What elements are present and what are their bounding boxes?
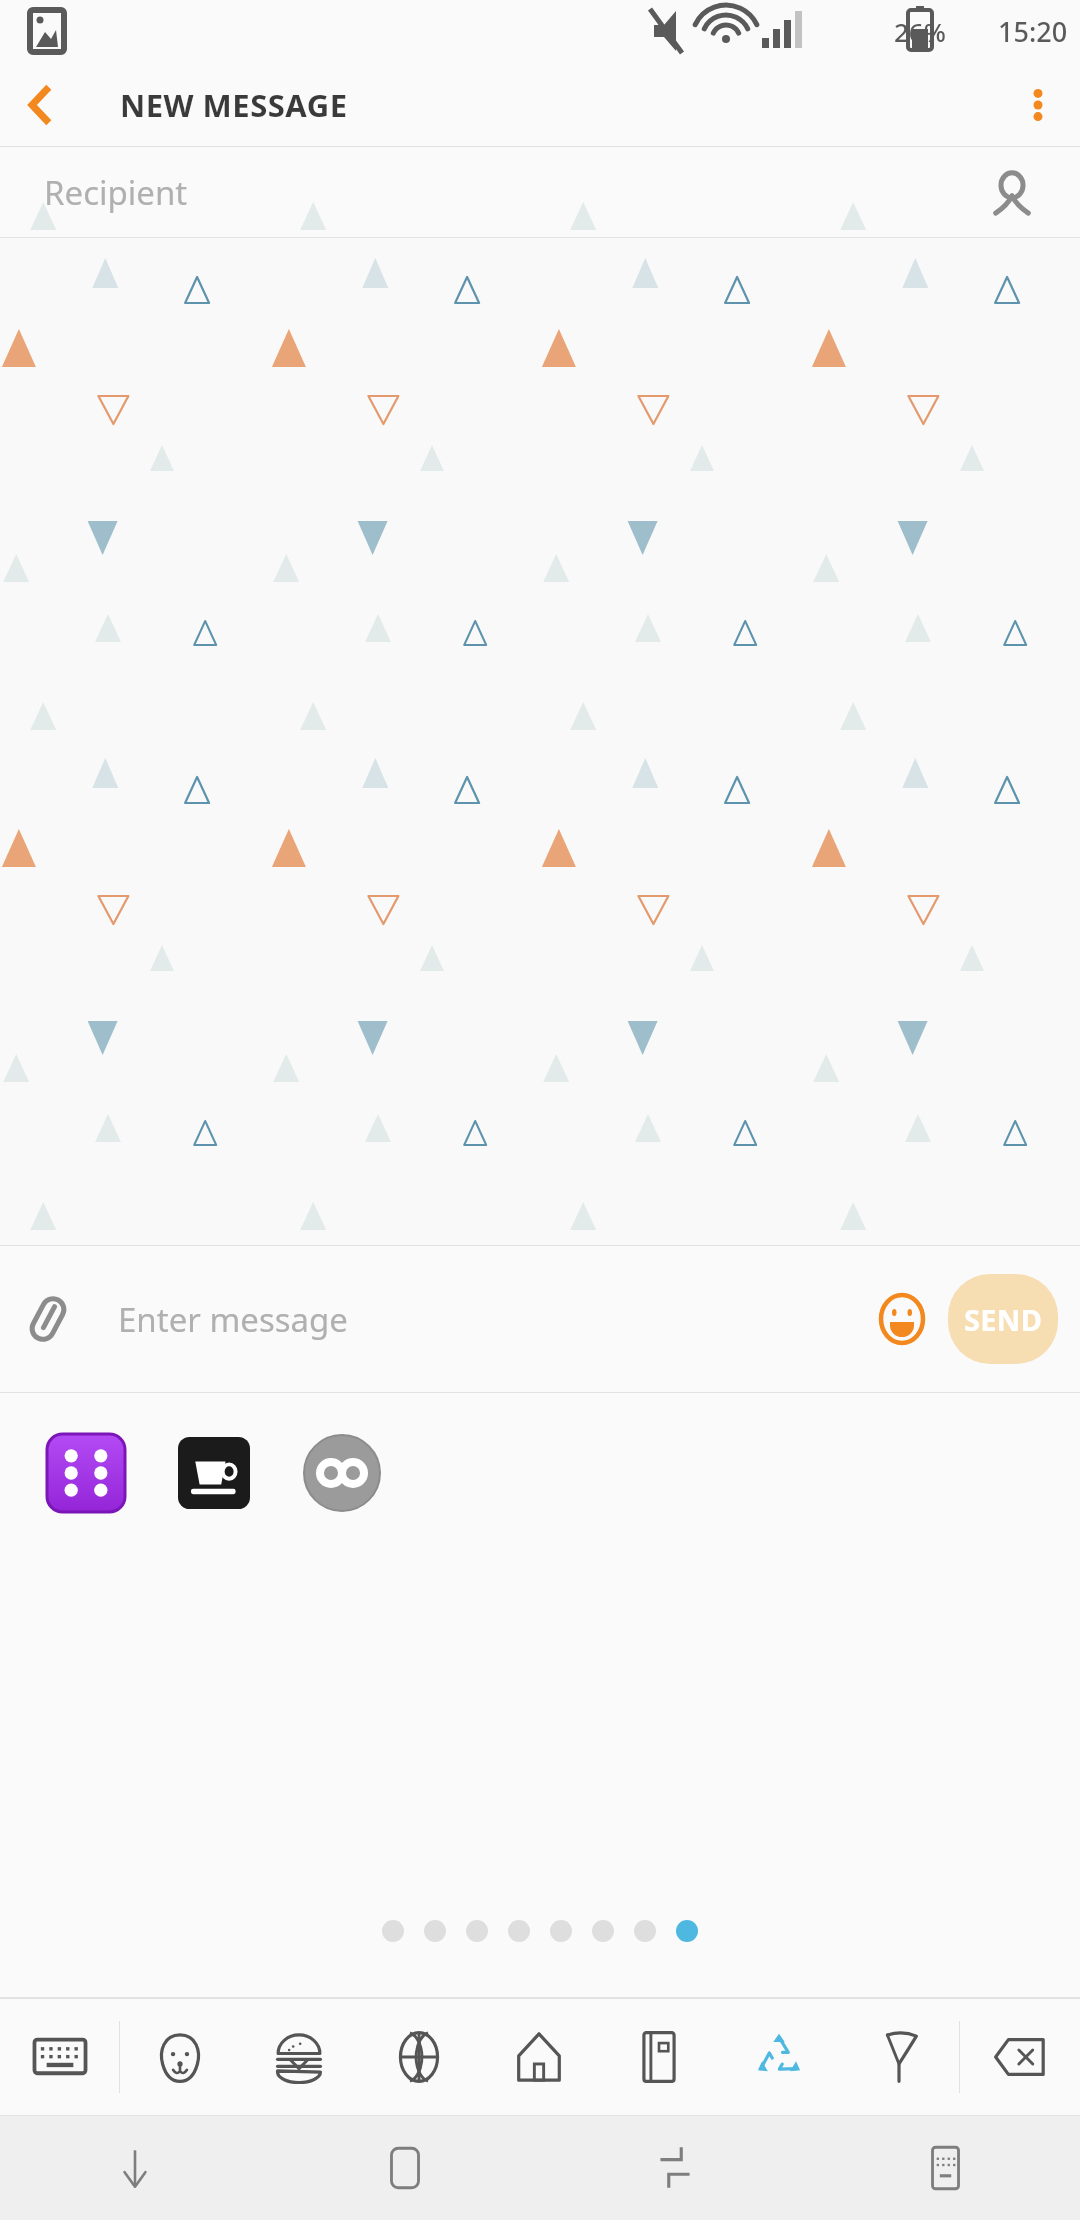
button[interactable] xyxy=(592,1920,614,1942)
button[interactable] xyxy=(424,1920,446,1942)
button[interactable]: Symbols xyxy=(719,1998,839,2116)
button[interactable] xyxy=(508,1920,530,1942)
staticText: SEND xyxy=(964,1300,1043,1339)
button[interactable]: Add recipient from contacts xyxy=(976,157,1048,229)
button[interactable]: Recent apps xyxy=(540,2116,810,2220)
button[interactable] xyxy=(382,1920,404,1942)
button[interactable]: Back xyxy=(0,65,80,145)
button[interactable] xyxy=(292,1423,392,1523)
button[interactable]: Flags xyxy=(839,1998,959,2116)
button[interactable] xyxy=(550,1920,572,1942)
button[interactable] xyxy=(676,1920,698,1942)
button[interactable]: Enter message xyxy=(118,1297,348,1342)
staticText: Recipient xyxy=(44,170,188,215)
button[interactable]: Animals xyxy=(120,1998,239,2116)
staticText: 15:20 xyxy=(998,13,1068,50)
button[interactable]: Emoji xyxy=(864,1281,940,1357)
button[interactable]: Food xyxy=(239,1998,359,2116)
button[interactable]: Attach xyxy=(8,1279,88,1359)
button[interactable]: Objects xyxy=(599,1998,719,2116)
button[interactable]: SEND xyxy=(948,1274,1058,1364)
button[interactable]: Keyboard xyxy=(0,1998,119,2116)
button[interactable]: Recipient xyxy=(0,147,1080,238)
button[interactable] xyxy=(466,1920,488,1942)
button[interactable]: Home xyxy=(270,2116,540,2220)
staticText: NEW MESSAGE xyxy=(120,84,348,126)
staticText: 26% xyxy=(894,14,946,49)
button[interactable] xyxy=(634,1920,656,1942)
button[interactable] xyxy=(36,1423,136,1523)
button[interactable] xyxy=(164,1423,264,1523)
button[interactable]: Sports xyxy=(359,1998,479,2116)
button[interactable]: Places xyxy=(479,1998,599,2116)
button[interactable]: More options xyxy=(996,63,1080,147)
button[interactable]: Keyboard xyxy=(810,2116,1080,2220)
button[interactable]: Backspace xyxy=(960,1998,1080,2116)
button[interactable]: Hide keyboard xyxy=(0,2116,270,2220)
